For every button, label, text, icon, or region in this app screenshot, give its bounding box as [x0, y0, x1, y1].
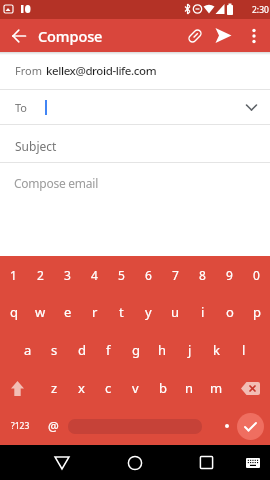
button[interactable]: k: [203, 331, 230, 369]
staticText: p: [253, 303, 261, 321]
button[interactable]: y: [135, 293, 162, 331]
staticText: j: [188, 341, 192, 359]
button[interactable]: d: [68, 331, 95, 369]
button[interactable]: [238, 19, 270, 52]
staticText: 4: [91, 267, 98, 283]
button[interactable]: u: [162, 293, 189, 331]
button[interactable]: f: [95, 331, 122, 369]
button[interactable]: 5: [108, 256, 135, 293]
button[interactable]: 6: [135, 256, 162, 293]
staticText: t: [119, 303, 124, 321]
staticText: i: [201, 303, 205, 321]
staticText: 9: [226, 267, 233, 283]
button[interactable]: From: [0, 52, 270, 89]
staticText: z: [51, 379, 58, 397]
button[interactable]: To: [0, 90, 270, 124]
button[interactable]: Subject: [0, 125, 270, 162]
button[interactable]: [181, 19, 208, 52]
button[interactable]: [202, 407, 237, 445]
button[interactable]: s: [41, 331, 68, 369]
button[interactable]: Compose email: [0, 163, 270, 203]
staticText: n: [185, 379, 194, 397]
button[interactable]: n: [176, 369, 203, 407]
button[interactable]: c: [95, 369, 122, 407]
button[interactable]: [0, 369, 41, 407]
staticText: q: [10, 303, 18, 321]
button[interactable]: [242, 445, 264, 480]
button[interactable]: [48, 445, 76, 480]
staticText: e: [64, 303, 72, 321]
button[interactable]: [208, 19, 238, 52]
staticText: v: [132, 379, 139, 397]
button[interactable]: q: [0, 293, 27, 331]
button[interactable]: e: [54, 293, 81, 331]
button[interactable]: 0: [243, 256, 270, 293]
staticText: 2: [37, 267, 44, 283]
staticText: r: [92, 303, 98, 321]
button[interactable]: 9: [216, 256, 243, 293]
staticText: 6: [145, 267, 152, 283]
button[interactable]: j: [176, 331, 203, 369]
button[interactable]: i: [189, 293, 216, 331]
button[interactable]: p: [243, 293, 270, 331]
button[interactable]: t: [108, 293, 135, 331]
staticText: To: [15, 100, 28, 115]
staticText: d: [78, 341, 86, 359]
staticText: u: [171, 303, 180, 321]
staticText: @: [48, 418, 59, 434]
staticText: l: [242, 341, 246, 359]
staticText: 7: [172, 267, 179, 283]
button[interactable]: b: [149, 369, 176, 407]
staticText: s: [51, 341, 58, 359]
button[interactable]: 3: [54, 256, 81, 293]
staticText: 2:30: [252, 4, 269, 16]
button[interactable]: x: [68, 369, 95, 407]
button[interactable]: ?123: [0, 407, 40, 445]
staticText: Subject: [15, 138, 57, 154]
staticText: c: [105, 379, 112, 397]
button[interactable]: w: [27, 293, 54, 331]
button[interactable]: z: [41, 369, 68, 407]
staticText: f: [106, 341, 111, 359]
staticText: 5: [118, 267, 125, 283]
staticText: Compose email: [14, 175, 99, 191]
button[interactable]: l: [230, 331, 257, 369]
staticText: 8: [199, 267, 206, 283]
button[interactable]: v: [122, 369, 149, 407]
button[interactable]: 4: [81, 256, 108, 293]
button[interactable]: 1: [0, 256, 27, 293]
button[interactable]: o: [216, 293, 243, 331]
button[interactable]: 2: [27, 256, 54, 293]
button[interactable]: [230, 369, 270, 407]
staticText: k: [213, 341, 220, 359]
staticText: 3: [64, 267, 71, 283]
button[interactable]: r: [81, 293, 108, 331]
staticText: From: [15, 63, 42, 78]
staticText: 0: [253, 267, 260, 283]
button[interactable]: [68, 419, 202, 434]
button[interactable]: [121, 445, 149, 480]
button[interactable]: g: [122, 331, 149, 369]
staticText: 1: [10, 267, 17, 283]
staticText: a: [24, 341, 32, 359]
button[interactable]: 8: [189, 256, 216, 293]
button[interactable]: [192, 445, 220, 480]
staticText: b: [159, 379, 167, 397]
staticText: g: [132, 341, 140, 359]
staticText: o: [226, 303, 234, 321]
button[interactable]: m: [203, 369, 230, 407]
button[interactable]: [237, 413, 264, 440]
staticText: h: [158, 341, 167, 359]
staticText: kellex@droid-life.com: [46, 63, 157, 79]
button[interactable]: a: [14, 331, 41, 369]
staticText: ?123: [11, 420, 30, 432]
staticText: Compose: [38, 26, 103, 46]
staticText: w: [35, 303, 46, 321]
staticText: m: [210, 379, 223, 397]
staticText: x: [78, 379, 85, 397]
button[interactable]: [0, 19, 38, 52]
button[interactable]: 7: [162, 256, 189, 293]
button[interactable]: @: [40, 407, 67, 445]
button[interactable]: h: [149, 331, 176, 369]
staticText: y: [145, 303, 152, 321]
